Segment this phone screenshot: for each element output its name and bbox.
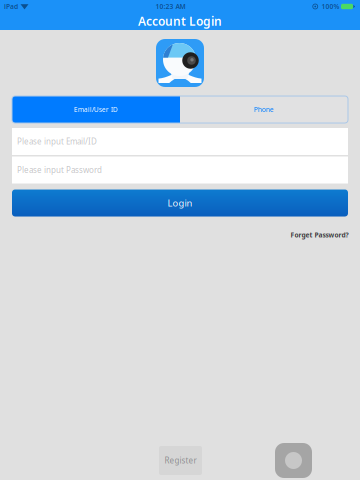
button[interactable]: Email/User ID <box>12 96 180 123</box>
staticText: Account Login <box>138 13 222 29</box>
button[interactable]: Login <box>12 189 348 216</box>
staticText: Login <box>167 197 192 209</box>
staticText: 100% <box>321 2 339 11</box>
staticText: Email/User ID <box>74 105 118 114</box>
staticText: 10:23 AM <box>155 2 185 11</box>
button[interactable]: Forget Password? <box>11 230 348 239</box>
button[interactable]: Phone <box>180 96 348 123</box>
staticText: Phone <box>254 105 274 114</box>
staticText: Register <box>164 455 196 466</box>
staticText: iPad <box>4 2 18 11</box>
button[interactable]: Register <box>159 446 202 475</box>
staticText: Please input Email/ID <box>17 136 97 147</box>
staticText: Forget Password? <box>290 230 348 239</box>
staticText: Please input Password <box>17 165 102 175</box>
button[interactable]: AssistiveTouch <box>275 443 312 478</box>
